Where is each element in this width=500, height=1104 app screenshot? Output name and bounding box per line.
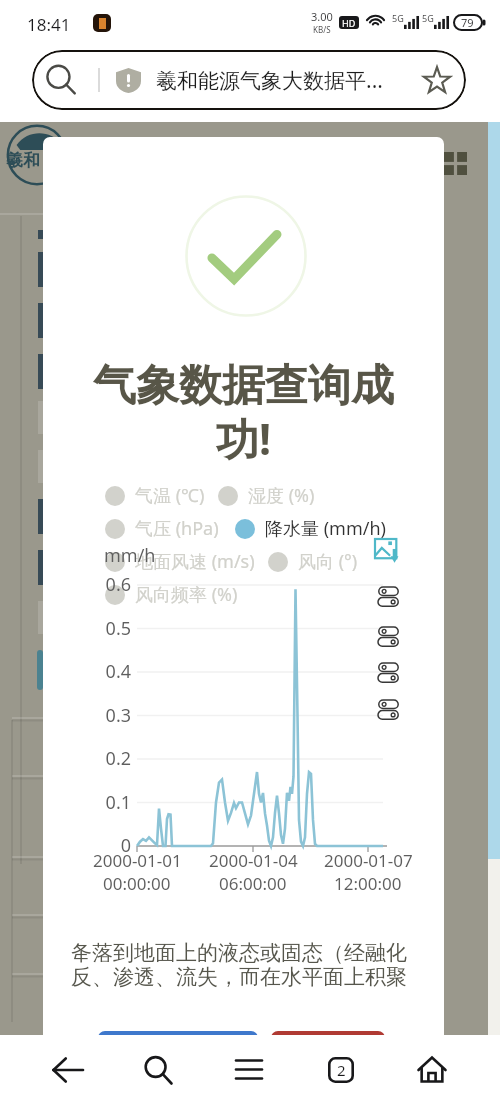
staticText: mm/h xyxy=(104,543,156,568)
staticText: 气象数据查询成功! xyxy=(86,359,401,468)
button[interactable]: Grid view xyxy=(444,152,467,175)
button[interactable]: Search xyxy=(124,1035,192,1104)
other: Toggle settings xyxy=(378,663,399,683)
other: Save image xyxy=(374,537,400,563)
other: Toggle settings xyxy=(378,700,399,720)
staticText: 2000-01-01 xyxy=(93,849,182,872)
button[interactable]: Menu xyxy=(215,1035,283,1104)
button[interactable]: 风向频率 (%) xyxy=(105,582,238,607)
staticText: 羲和 xyxy=(6,150,40,171)
staticText: 3.00 xyxy=(311,9,333,24)
staticText: 18:41 xyxy=(27,13,71,36)
staticText: 0 xyxy=(51,833,131,858)
other: Toggle settings xyxy=(378,627,399,647)
staticText: 0.2 xyxy=(51,746,131,771)
staticText: 羲和能源气象大数据平... xyxy=(156,66,383,95)
button[interactable]: Search xyxy=(32,50,466,110)
staticText: 00:00:00 xyxy=(103,872,171,895)
staticText: 5G xyxy=(392,12,404,24)
staticText: 风向 (°) xyxy=(298,549,358,574)
staticText: 气压 (hPa) xyxy=(135,516,219,541)
staticText: 12:00:00 xyxy=(334,872,402,895)
button[interactable]: 气压 (hPa) xyxy=(105,516,219,541)
staticText: 0.3 xyxy=(51,703,131,728)
staticText: 风向频率 (%) xyxy=(135,582,238,607)
staticText: 2 xyxy=(337,1060,346,1080)
staticText: 2000-01-04 xyxy=(209,849,298,872)
button[interactable]: 降水量 (mm/h) xyxy=(235,516,386,541)
staticText: 湿度 (%) xyxy=(248,483,315,508)
other: Bookmark xyxy=(422,65,452,95)
staticText: HD xyxy=(342,17,356,29)
button[interactable]: 风向 (°) xyxy=(268,549,358,574)
staticText: KB/S xyxy=(313,24,331,35)
button[interactable]: Home xyxy=(398,1035,466,1104)
other: Toggle settings xyxy=(378,587,399,607)
button[interactable]: Back xyxy=(34,1035,102,1104)
staticText: 气温 (℃) xyxy=(135,483,205,508)
staticText: 2000-01-07 xyxy=(324,849,413,872)
staticText: 降水量 (mm/h) xyxy=(265,516,386,541)
button[interactable] xyxy=(271,1031,385,1035)
button[interactable]: 湿度 (%) xyxy=(218,483,315,508)
button[interactable] xyxy=(98,1031,258,1035)
button[interactable]: Tabs xyxy=(307,1035,375,1104)
staticText: 79 xyxy=(461,15,474,30)
staticText: 06:00:00 xyxy=(219,872,287,895)
staticText: 0.4 xyxy=(51,659,131,684)
staticText: 地面风速 (m/s) xyxy=(135,549,255,574)
button[interactable]: 气温 (℃) xyxy=(105,483,205,508)
button[interactable]: 地面风速 (m/s) xyxy=(105,549,255,574)
staticText: 夅落到地面上的液态或固态（经融化 xyxy=(71,940,407,966)
staticText: 5G xyxy=(422,12,434,24)
staticText: 0.1 xyxy=(51,790,131,815)
staticText: 反、渗透、流失，而在水平面上积聚 xyxy=(71,964,407,990)
other: Search xyxy=(45,64,77,96)
staticText: 0.6 xyxy=(51,572,131,597)
staticText: 0.5 xyxy=(51,616,131,641)
